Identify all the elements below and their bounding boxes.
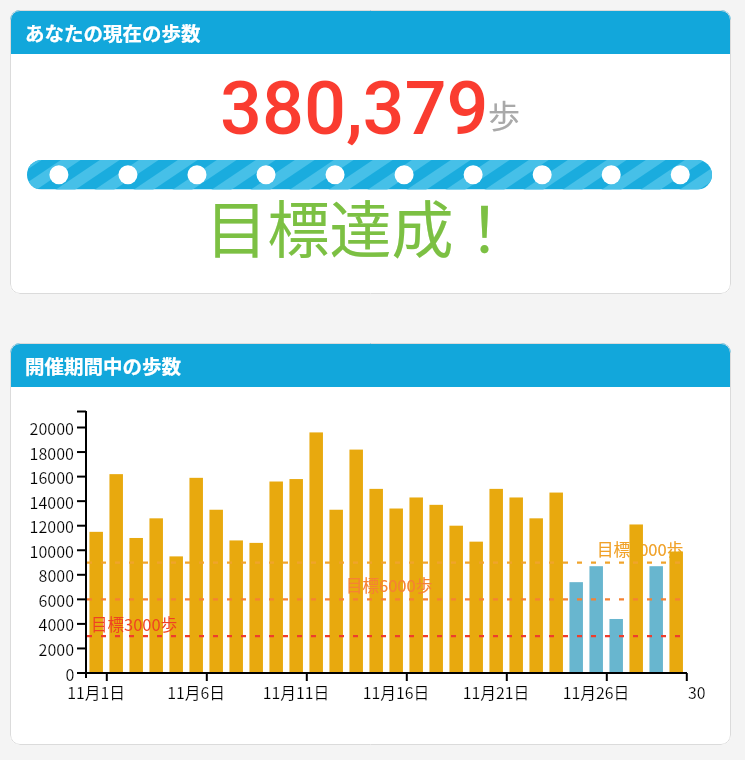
button[interactable] [10, 10, 731, 294]
button[interactable] [10, 343, 731, 745]
